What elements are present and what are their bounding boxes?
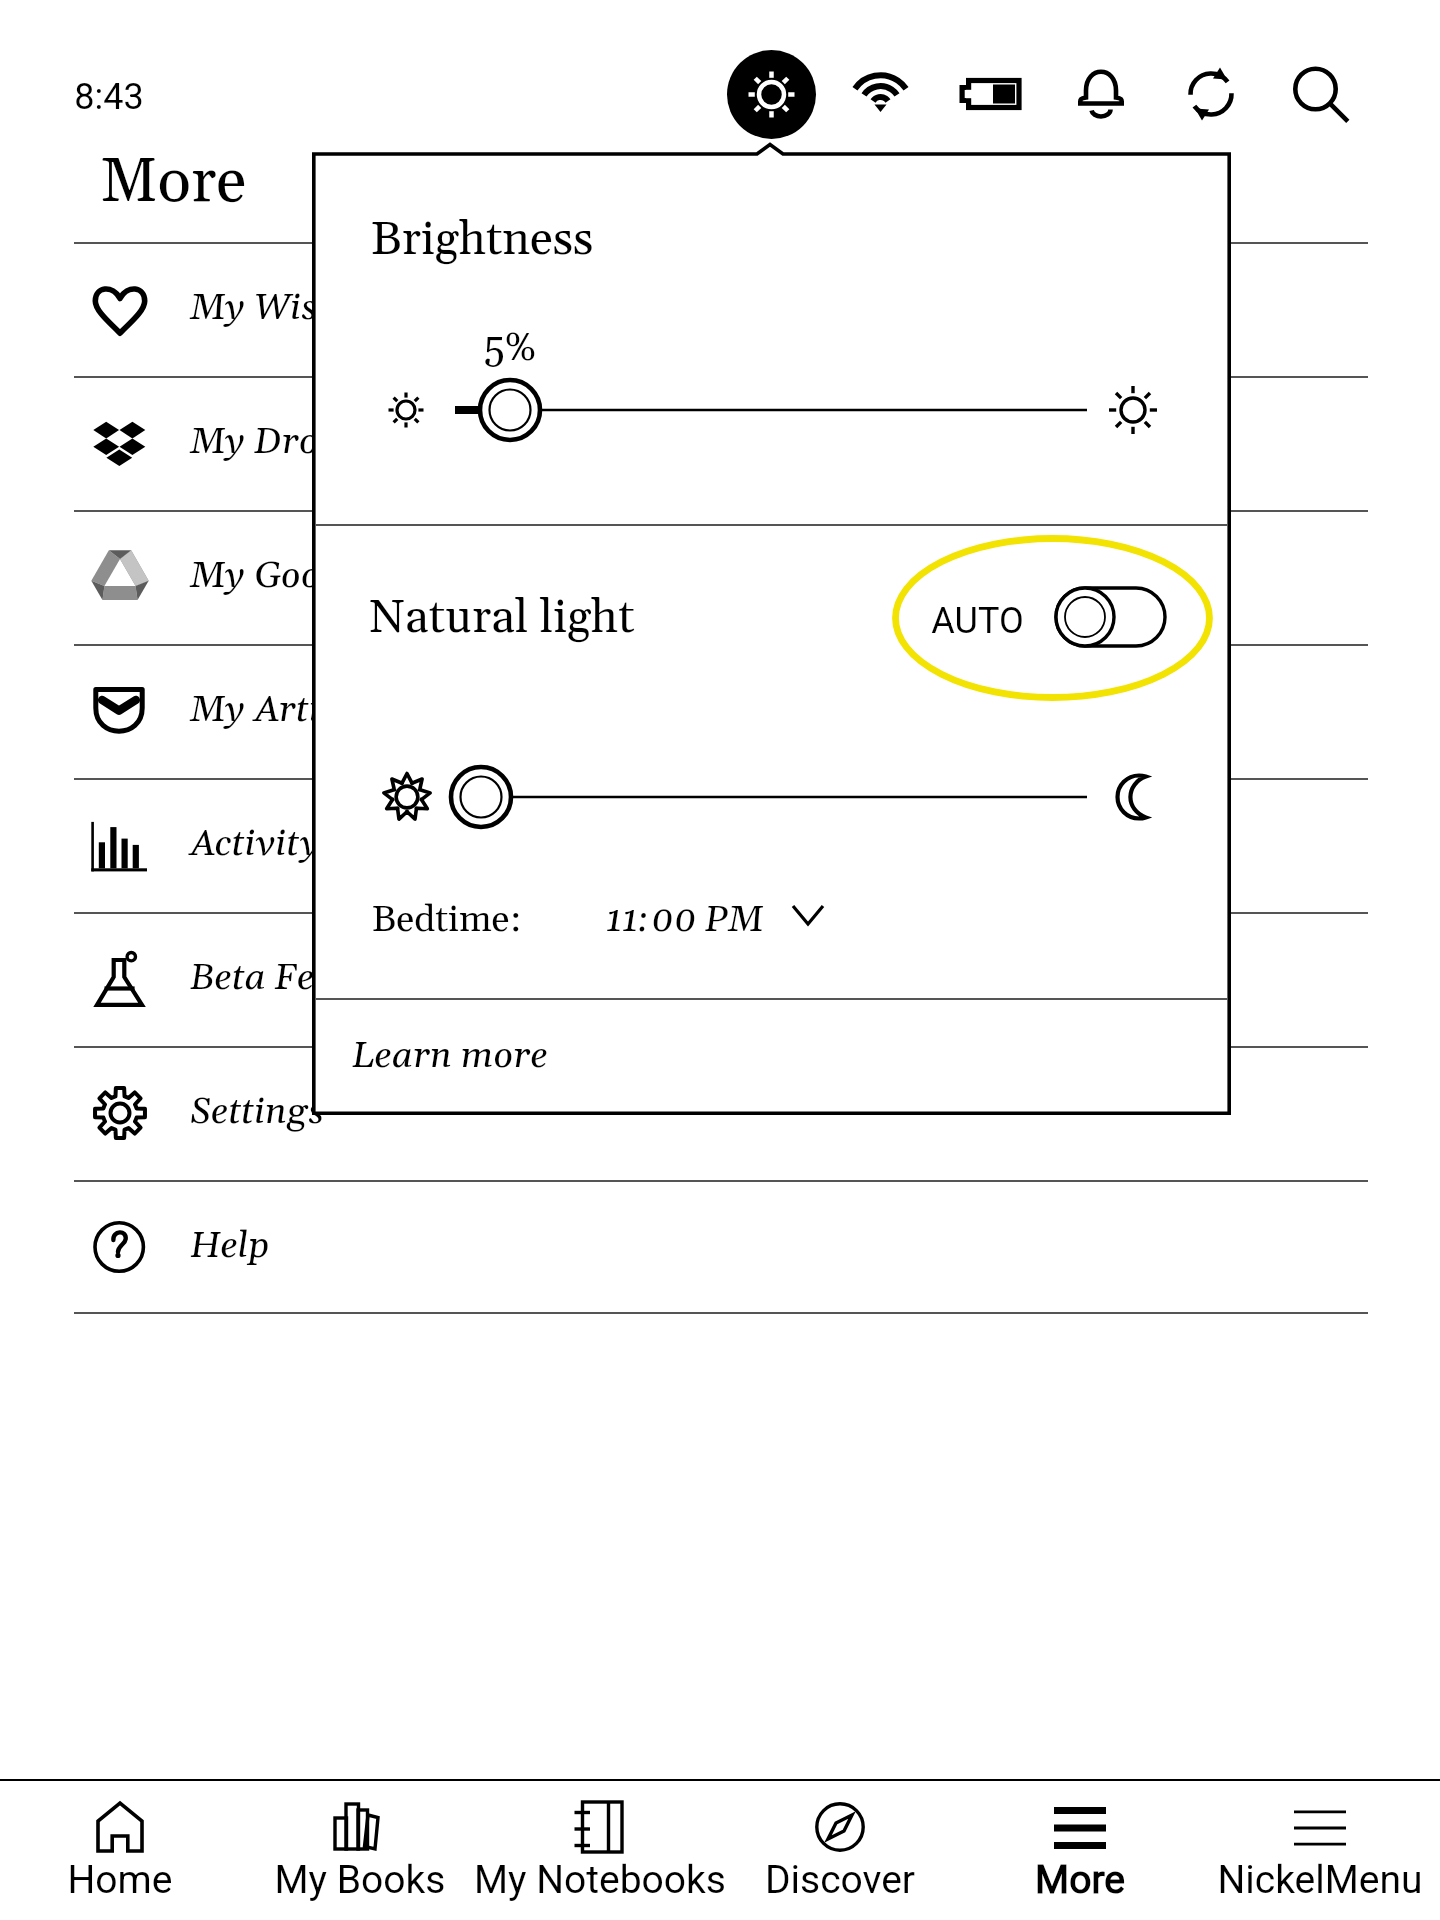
staticText: 11:00 PM [605,897,763,944]
staticText: Home [0,1857,270,1903]
staticText: Brightness [371,210,594,270]
staticText: My Notebooks [450,1857,750,1903]
staticText: More [930,1857,1230,1903]
button[interactable]: More [960,1781,1200,1920]
button[interactable]: My Notebooks [480,1781,720,1920]
staticText: My Google Drive [190,553,472,600]
staticText: Activity [190,821,320,868]
staticText: Discover [690,1857,990,1903]
button[interactable]: Settings [74,1046,1368,1180]
button[interactable] [332,757,1210,857]
staticText: Natural light [369,588,635,648]
staticText: Settings [190,1089,324,1136]
button[interactable]: Activity [74,778,1368,912]
staticText: Beta Features [190,955,421,1002]
button[interactable]: Sync [1170,60,1252,142]
staticText: My Books [210,1857,510,1903]
button[interactable]: My Google Drive [74,510,1368,644]
staticText: AUTO [931,600,1024,642]
staticText: More [100,143,247,222]
button[interactable]: Battery [950,64,1032,146]
button[interactable]: Help [74,1180,1368,1314]
button[interactable]: 11:00 PM [592,887,872,949]
staticText: My Articles [190,687,381,734]
staticText: NickelMenu [1170,1857,1440,1903]
staticText: Help [190,1223,270,1270]
staticText: 8:43 [74,76,144,118]
button[interactable]: Discover [720,1781,960,1920]
button[interactable]: My Dropbox [74,376,1368,510]
button[interactable]: Wi-Fi [840,62,922,144]
button[interactable]: NickelMenu [1200,1781,1440,1920]
staticText: 5% [484,324,537,374]
button[interactable] [332,370,1210,470]
staticText: Bedtime: [372,897,521,944]
button[interactable]: Notifications [1060,60,1142,142]
button[interactable]: My Articles [74,644,1368,778]
button[interactable]: Beta Features [74,912,1368,1046]
button[interactable]: My Wishlist [74,242,1368,376]
staticText: My Wishlist [190,285,389,332]
staticText: My Dropbox [190,419,399,466]
button[interactable]: Brightness [727,50,816,139]
button[interactable]: Learn more [320,1004,650,1110]
button[interactable]: Search [1275,50,1357,132]
button[interactable]: My Books [240,1781,480,1920]
button[interactable]: Home [0,1781,240,1920]
staticText: Learn more [352,1033,548,1080]
button[interactable] [1054,586,1167,648]
